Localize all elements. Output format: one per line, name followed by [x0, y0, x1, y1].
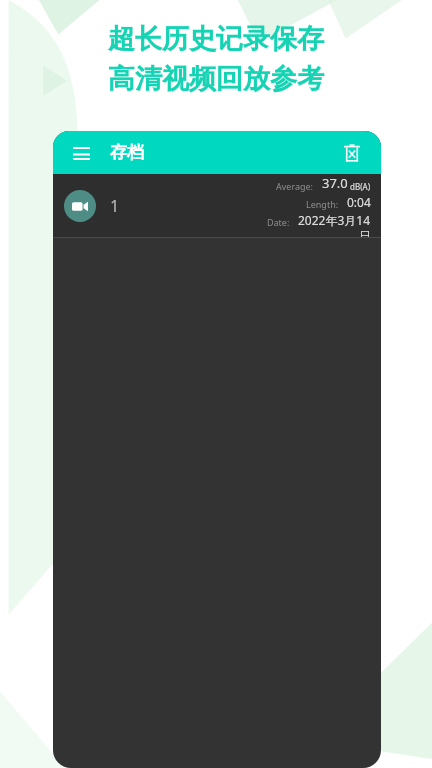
staticText: 高清视频回放参考 [108, 62, 324, 96]
staticText: Date: [267, 216, 290, 228]
button[interactable]: Delete [336, 137, 368, 169]
button[interactable]: 1 [53, 174, 381, 238]
staticText: 37.0 [322, 174, 348, 192]
staticText: 存档 [110, 142, 144, 163]
staticText: Length: [306, 198, 339, 210]
staticText: dB(A) [348, 181, 371, 192]
staticText: 1 [110, 195, 120, 217]
staticText: 2022年3月14 [298, 212, 371, 228]
staticText: 0:04 [347, 194, 371, 210]
staticText: 超长历史记录保存 [108, 22, 324, 56]
staticText: Average: [276, 180, 314, 192]
staticText: 日 [359, 228, 371, 238]
button[interactable]: Menu [66, 138, 96, 168]
